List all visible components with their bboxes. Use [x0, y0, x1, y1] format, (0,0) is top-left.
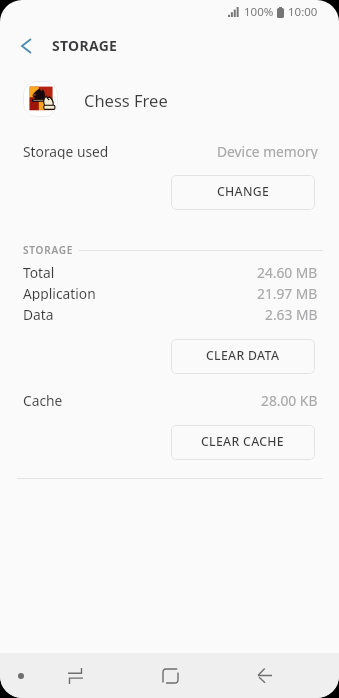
- button[interactable]: Cache: [0, 391, 339, 408]
- button[interactable]: Back: [8, 28, 44, 64]
- staticText: Total: [23, 263, 55, 280]
- button[interactable]: CHANGE: [171, 175, 315, 210]
- staticText: STORAGE: [52, 36, 118, 55]
- button[interactable]: CLEAR DATA: [171, 339, 315, 374]
- staticText: Cache: [23, 391, 63, 408]
- button[interactable]: Data: [0, 305, 339, 322]
- button[interactable]: Storage used: [0, 142, 339, 159]
- staticText: Device memory: [217, 142, 318, 159]
- staticText: Application: [23, 284, 96, 301]
- button[interactable]: Menu: [2, 656, 39, 695]
- staticText: Chess Free: [84, 89, 168, 111]
- staticText: CLEAR DATA: [206, 347, 280, 364]
- staticText: 21.97 MB: [257, 284, 318, 301]
- staticText: CLEAR CACHE: [201, 433, 285, 450]
- staticText: Data: [23, 305, 54, 322]
- staticText: CHANGE: [217, 183, 270, 200]
- button[interactable]: Chess Free: [0, 76, 339, 122]
- button[interactable]: CLEAR CACHE: [171, 425, 315, 460]
- button[interactable]: Home: [146, 656, 194, 695]
- staticText: 24.60 MB: [257, 263, 318, 280]
- staticText: 10:00: [288, 4, 318, 20]
- button[interactable]: Application: [0, 284, 339, 301]
- staticText: 2.63 MB: [265, 305, 318, 322]
- staticText: 28.00 KB: [261, 391, 318, 408]
- button[interactable]: Total: [0, 263, 339, 280]
- staticText: Storage used: [23, 142, 109, 159]
- staticText: STORAGE: [23, 243, 74, 257]
- button[interactable]: Back: [241, 656, 289, 695]
- button[interactable]: Recent apps: [52, 656, 99, 695]
- staticText: 100%: [244, 4, 274, 20]
